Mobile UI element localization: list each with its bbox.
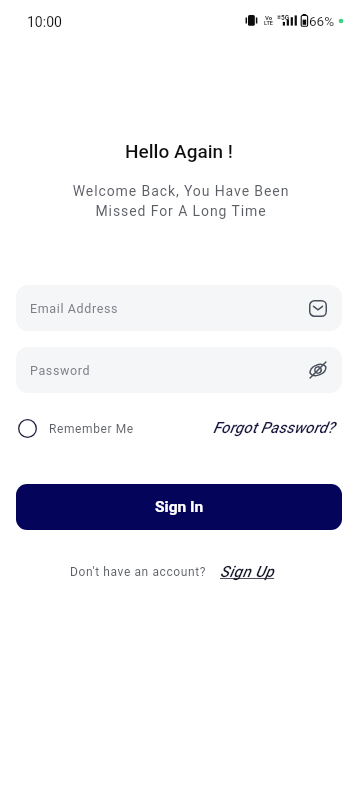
staticText: 66% xyxy=(309,13,335,29)
staticText: Password xyxy=(30,363,91,378)
button[interactable]: Forgot Password? xyxy=(213,414,335,442)
staticText: 10:00 xyxy=(27,14,62,30)
staticText: Vo xyxy=(265,14,273,21)
staticText: Sign In xyxy=(155,498,204,516)
other: Toggle password visibility xyxy=(309,361,327,379)
staticText: Sign Up xyxy=(220,563,275,581)
other: Email xyxy=(309,300,327,317)
staticText: Forgot Password? xyxy=(213,419,335,437)
button[interactable]: Sign Up xyxy=(220,563,275,581)
staticText: Email Address xyxy=(30,301,119,316)
staticText: Remember Me xyxy=(49,422,134,436)
staticText: Don't have an account? xyxy=(70,565,206,579)
button[interactable]: Password xyxy=(16,347,342,393)
staticText: Hello Again ! xyxy=(0,140,358,162)
button[interactable]: Remember Me xyxy=(18,414,134,443)
staticText: 5G xyxy=(281,14,290,22)
staticText: LTE xyxy=(264,20,273,26)
staticText: Welcome Back, You Have Been Missed For A… xyxy=(2,183,358,219)
button[interactable]: Email Address xyxy=(16,285,342,331)
button[interactable]: Sign In xyxy=(16,484,342,530)
